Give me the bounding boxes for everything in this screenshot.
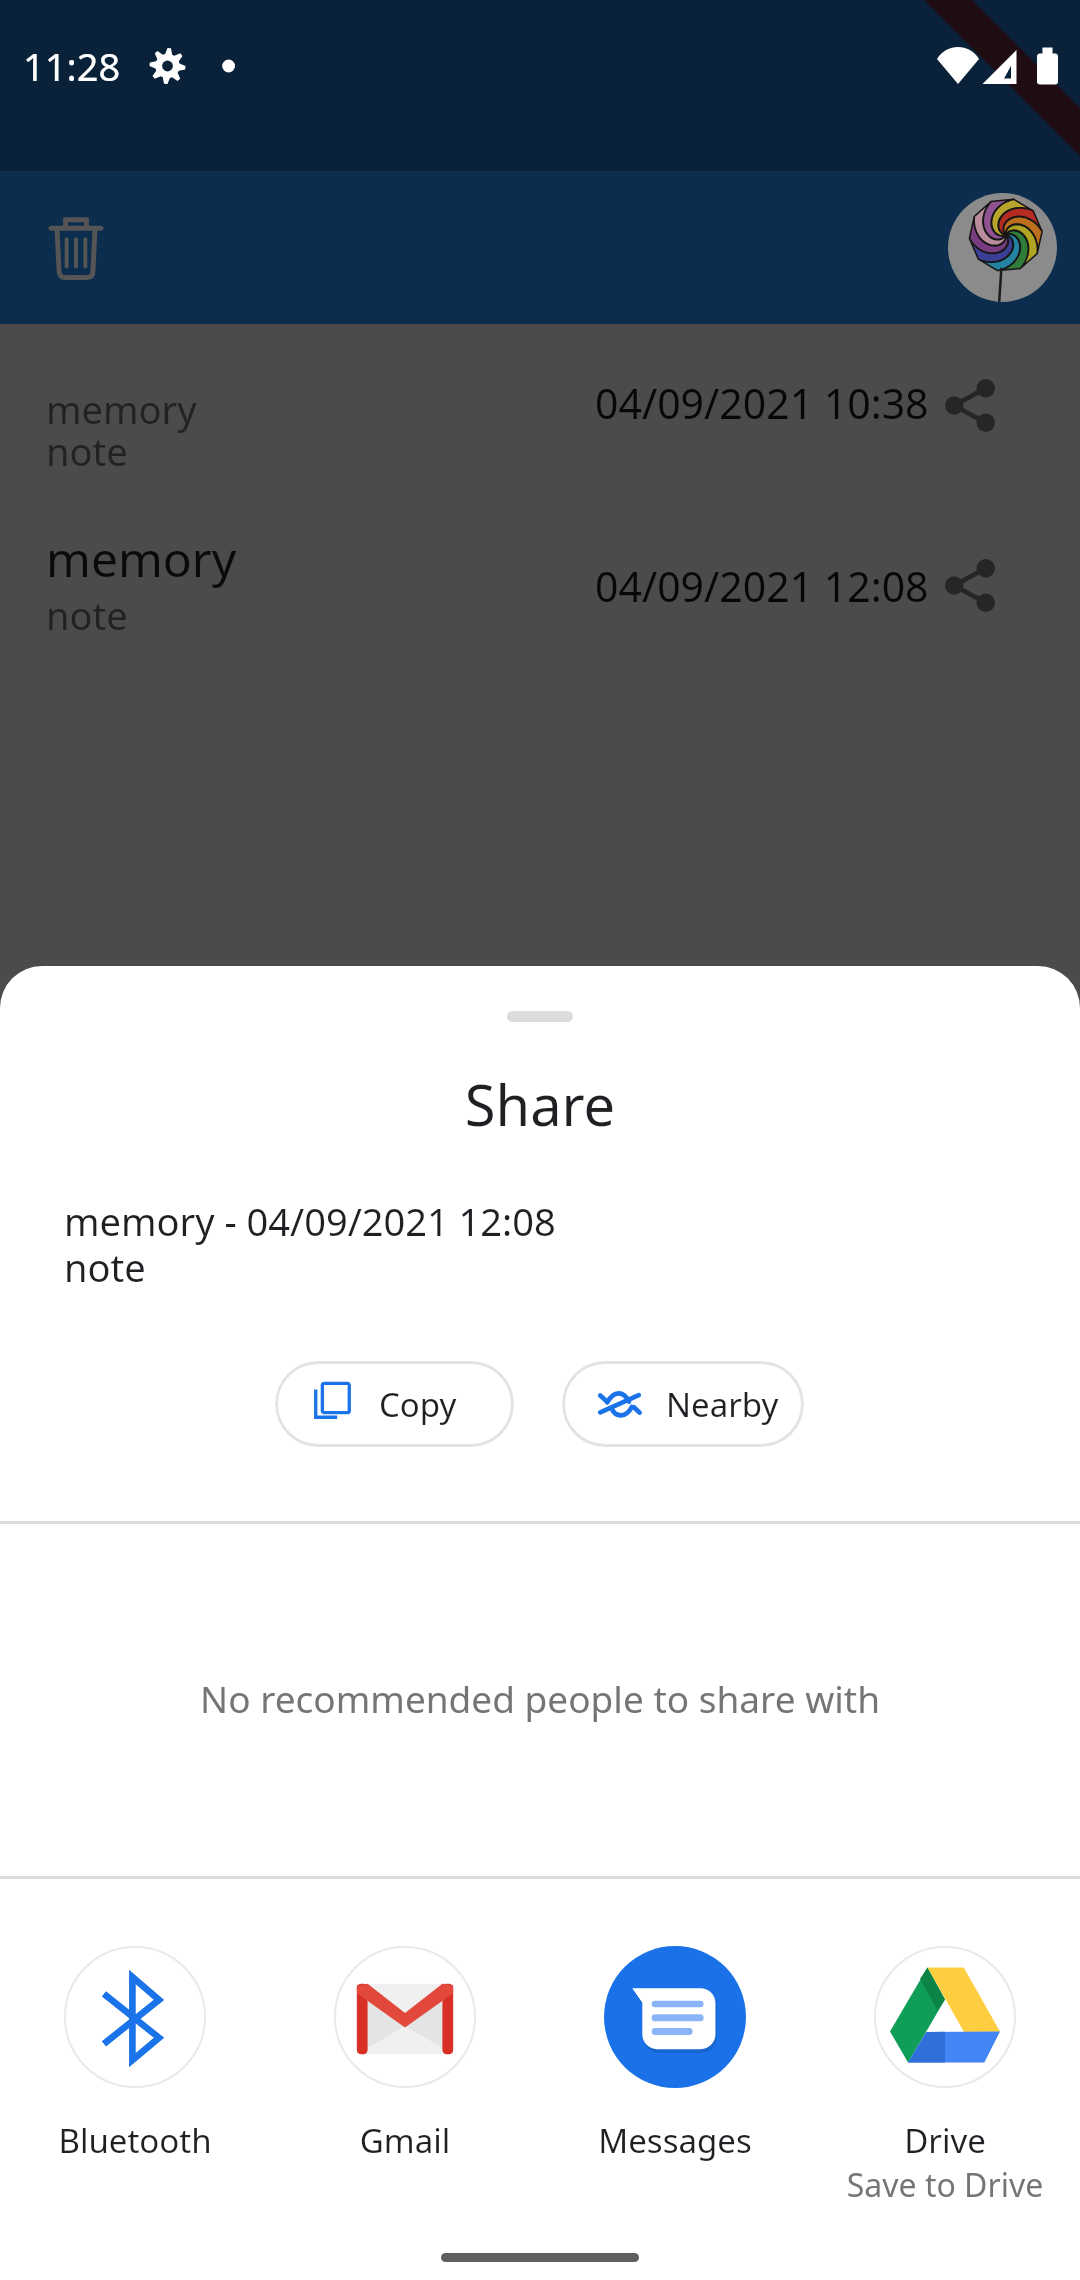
button[interactable]: Gmail [270, 1934, 540, 2182]
staticText: memory [46, 526, 237, 591]
staticText: 04/09/2021 12:08 [595, 558, 929, 614]
staticText: Share [0, 1066, 1080, 1142]
button[interactable]: Share [909, 524, 1031, 646]
staticText: Copy [379, 1382, 457, 1427]
button[interactable]: Account [948, 193, 1057, 302]
button[interactable]: Drive [810, 1934, 1080, 2182]
staticText: Bluetooth [0, 2118, 270, 2163]
button[interactable]: Share [909, 344, 1031, 466]
button[interactable]: Nearby [562, 1361, 804, 1447]
button[interactable]: memory [0, 324, 1080, 504]
button[interactable]: Bluetooth [0, 1934, 270, 2182]
staticText: Messages [540, 2118, 810, 2163]
button[interactable]: memory [0, 504, 1080, 684]
staticText: Nearby [666, 1382, 779, 1427]
staticText: memory - 04/09/2021 12:08 note [64, 1195, 556, 1293]
staticText: 04/09/2021 10:38 [595, 375, 929, 431]
staticText: Gmail [270, 2118, 540, 2163]
button[interactable]: Messages [540, 1934, 810, 2182]
staticText: note [46, 589, 128, 641]
staticText: Save to Drive [810, 2163, 1080, 2207]
staticText: 11:28 [23, 40, 121, 92]
staticText: note [46, 425, 128, 477]
button[interactable]: Delete [19, 191, 132, 304]
button[interactable]: Copy [275, 1361, 514, 1447]
staticText: memory [46, 383, 197, 435]
staticText: No recommended people to share with [0, 1673, 1080, 1723]
staticText: Drive [810, 2118, 1080, 2163]
